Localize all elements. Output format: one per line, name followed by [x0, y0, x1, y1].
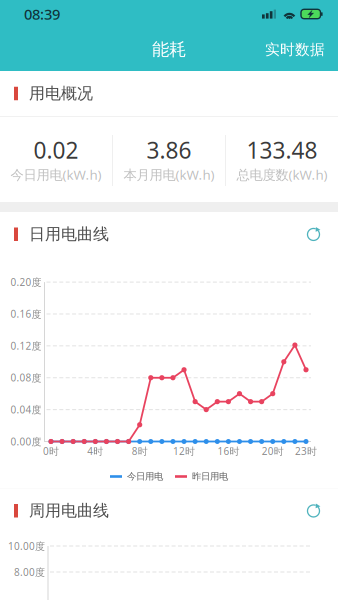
staticText: 4时: [87, 444, 103, 458]
staticText: 日用电曲线: [29, 224, 109, 244]
staticText: 8时: [132, 444, 148, 458]
staticText: 周用电曲线: [29, 501, 109, 521]
staticText: 本月用电(kW.h): [123, 165, 214, 184]
staticText: 10.00度: [8, 539, 45, 553]
staticText: 总电度数(kW.h): [236, 165, 327, 184]
button[interactable]: Refresh: [303, 223, 325, 245]
staticText: 8.00度: [14, 565, 45, 579]
staticText: 0.04度: [10, 403, 41, 416]
staticText: 0时: [43, 444, 59, 458]
staticText: 0.08度: [10, 371, 41, 384]
staticText: 133.48: [246, 135, 317, 165]
staticText: 实时数据: [265, 40, 325, 59]
staticText: 12时: [173, 444, 195, 458]
staticText: 0.16度: [10, 307, 41, 321]
staticText: 16时: [217, 444, 239, 458]
staticText: 昨日用电: [192, 471, 228, 482]
staticText: 3.86: [146, 135, 191, 165]
staticText: 今日用电: [127, 471, 163, 482]
button[interactable]: 实时数据: [249, 29, 338, 70]
staticText: 今日用电(kW.h): [10, 165, 101, 184]
staticText: 20时: [262, 444, 284, 458]
staticText: 0.00度: [10, 435, 41, 448]
button[interactable]: Refresh: [303, 500, 325, 522]
staticText: 0.12度: [10, 339, 41, 353]
staticText: 能耗: [152, 39, 186, 60]
staticText: 用电概况: [29, 83, 93, 104]
staticText: 23时: [295, 444, 317, 458]
staticText: 0.02: [33, 135, 78, 165]
staticText: 0.20度: [10, 275, 41, 289]
staticText: 08:39: [24, 4, 60, 24]
